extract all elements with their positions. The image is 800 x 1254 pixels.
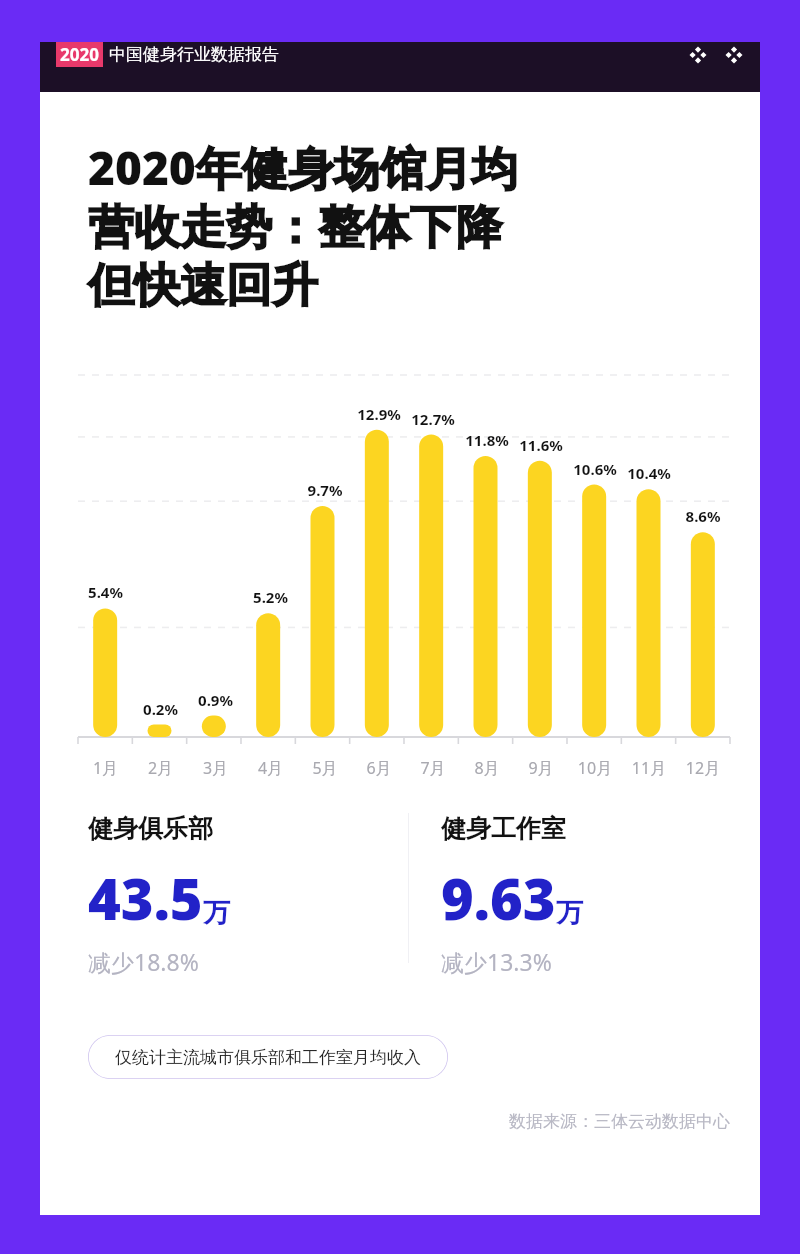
staticText: 8月 [460, 757, 514, 779]
staticText: 8.6% [676, 506, 730, 526]
staticText: 0.2% [133, 699, 188, 719]
staticText: 11.6% [514, 435, 568, 455]
staticText: 0.9% [188, 690, 243, 710]
staticText: 中国健身行业数据报告 [109, 44, 279, 65]
staticText: 9.63 [441, 860, 556, 936]
staticText: 仅统计主流城市俱乐部和工作室月均收入 [115, 1047, 421, 1068]
staticText: 12.7% [406, 409, 460, 429]
staticText: 7月 [406, 757, 460, 779]
staticText: 2月 [133, 757, 188, 779]
staticText: 减少13.3% [441, 946, 552, 977]
staticText: 10.4% [622, 463, 676, 483]
staticText: 6月 [352, 757, 406, 779]
staticText: 10.6% [568, 459, 622, 479]
staticText: 9月 [514, 757, 568, 779]
staticText: 但快速回升 [88, 257, 318, 315]
button[interactable]: 仅统计主流城市俱乐部和工作室月均收入 [88, 1035, 448, 1079]
staticText: 2020 [60, 43, 99, 66]
staticText: 2020年健身场馆月均 [88, 136, 518, 199]
staticText: 4月 [243, 757, 298, 779]
staticText: 5.2% [243, 587, 298, 607]
staticText: 43.5 [88, 860, 203, 936]
staticText: 11.8% [460, 430, 514, 450]
staticText: 10月 [568, 757, 622, 779]
staticText: 健身工作室 [441, 813, 566, 844]
staticText: 3月 [188, 757, 243, 779]
button[interactable]: 健身工作室 [441, 813, 730, 977]
staticText: 12月 [676, 757, 730, 779]
staticText: 减少18.8% [88, 946, 199, 977]
button[interactable]: Decoration [688, 45, 708, 65]
button[interactable]: 健身俱乐部 [88, 813, 408, 977]
staticText: 12.9% [352, 404, 406, 424]
staticText: 营收走势：整体下降 [88, 199, 502, 257]
staticText: 万 [556, 896, 583, 930]
staticText: 健身俱乐部 [88, 813, 213, 844]
button[interactable]: Decoration [724, 45, 744, 65]
staticText: 9.7% [298, 480, 352, 500]
staticText: 11月 [622, 757, 676, 779]
staticText: 数据来源：三体云动数据中心 [88, 1111, 730, 1132]
staticText: 万 [203, 896, 230, 930]
staticText: 1月 [78, 757, 133, 779]
staticText: 5月 [298, 757, 352, 779]
staticText: 5.4% [78, 582, 133, 602]
